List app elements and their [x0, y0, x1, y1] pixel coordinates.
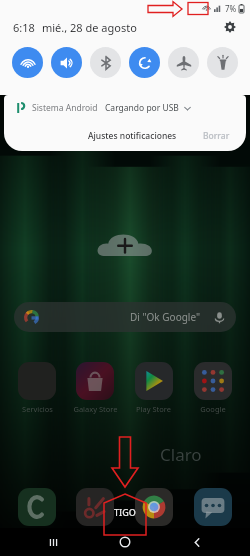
button[interactable]: Play Store: [124, 362, 183, 414]
button[interactable]: Recents: [34, 528, 72, 556]
staticText: Cargando por USB: [105, 102, 179, 114]
button[interactable]: Add widget: [97, 228, 153, 262]
button[interactable]: Google: [183, 362, 242, 414]
staticText: Ajustes notificaciones: [88, 130, 177, 142]
staticText: 7%: [225, 3, 237, 14]
staticText: Play Store: [136, 404, 171, 414]
button[interactable]: Ajustes notificaciones: [82, 126, 183, 146]
button[interactable]: Back: [178, 528, 216, 556]
staticText: Servicios: [22, 404, 53, 414]
staticText: mié., 28 de agosto: [42, 20, 137, 35]
staticText: TIGO: [114, 506, 136, 518]
button[interactable]: Sistema Android: [4, 95, 246, 121]
staticText: Google: [200, 404, 226, 414]
button[interactable]: Chrome: [135, 488, 173, 526]
button[interactable]: Borrar: [197, 126, 236, 146]
button[interactable]: Airplane mode: [168, 47, 199, 78]
button[interactable]: Galaxy Store: [66, 362, 124, 414]
button[interactable]: Home: [106, 528, 144, 556]
button[interactable]: Servicios: [8, 362, 66, 414]
button[interactable]: Auto sync: [129, 47, 160, 78]
staticText: 6:18: [13, 20, 35, 35]
button[interactable]: Settings: [221, 18, 239, 36]
button[interactable]: Carrier app: [76, 488, 114, 526]
button[interactable]: Wi-Fi: [12, 47, 43, 78]
staticText: Borrar: [203, 130, 230, 142]
button[interactable]: Di "Ok Google": [14, 302, 236, 332]
staticText: Sistema Android: [32, 102, 98, 114]
button[interactable]: Messages: [194, 488, 232, 526]
staticText: Di "Ok Google": [130, 310, 201, 324]
button[interactable]: Bluetooth: [90, 47, 121, 78]
button[interactable]: Phone: [18, 488, 56, 526]
staticText: Galaxy Store: [73, 404, 118, 414]
button[interactable]: Sound: [51, 47, 82, 78]
staticText: Claro: [160, 443, 202, 466]
button[interactable]: Flashlight: [207, 47, 238, 78]
